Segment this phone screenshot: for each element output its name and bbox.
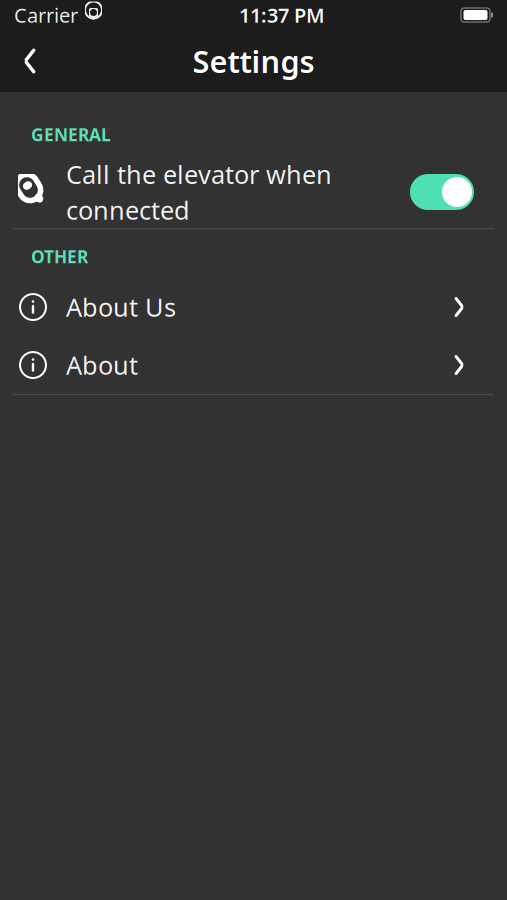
staticText: Carrier bbox=[14, 2, 78, 28]
staticText: 11:37 PM bbox=[239, 2, 325, 28]
button[interactable]: Call the elevator when bbox=[0, 156, 507, 228]
button[interactable]: About bbox=[0, 336, 507, 394]
staticText: Settings bbox=[192, 41, 314, 81]
button[interactable]: About Us bbox=[0, 278, 507, 336]
staticText: connected bbox=[66, 193, 190, 227]
staticText: About bbox=[66, 348, 138, 382]
staticText: About Us bbox=[66, 290, 176, 324]
staticText: OTHER bbox=[31, 245, 88, 268]
button[interactable]: Back bbox=[7, 38, 53, 84]
staticText: GENERAL bbox=[31, 123, 111, 146]
staticText: Call the elevator when bbox=[66, 157, 332, 191]
